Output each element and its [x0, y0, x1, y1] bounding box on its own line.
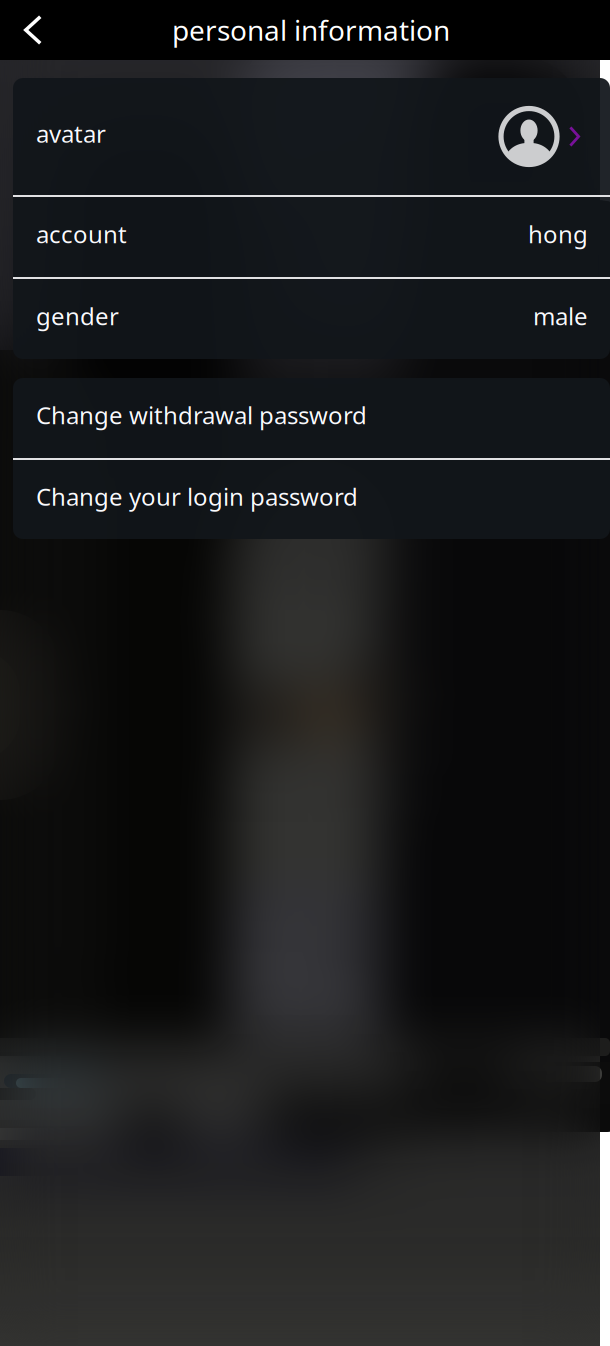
staticText: male — [533, 300, 588, 332]
staticText: avatar — [36, 118, 106, 149]
staticText: gender — [36, 300, 119, 332]
button[interactable]: avatar — [13, 78, 610, 195]
button[interactable]: Change your login password — [13, 460, 610, 539]
staticText: account — [36, 218, 127, 250]
button[interactable]: Back — [0, 0, 60, 60]
button[interactable]: gender — [13, 279, 610, 359]
button[interactable]: account — [13, 197, 610, 277]
staticText: hong — [528, 218, 588, 250]
staticText: Change your login password — [36, 481, 358, 512]
staticText: Change withdrawal password — [36, 399, 367, 431]
button[interactable]: Change withdrawal password — [13, 378, 610, 458]
staticText: personal information — [172, 11, 450, 49]
